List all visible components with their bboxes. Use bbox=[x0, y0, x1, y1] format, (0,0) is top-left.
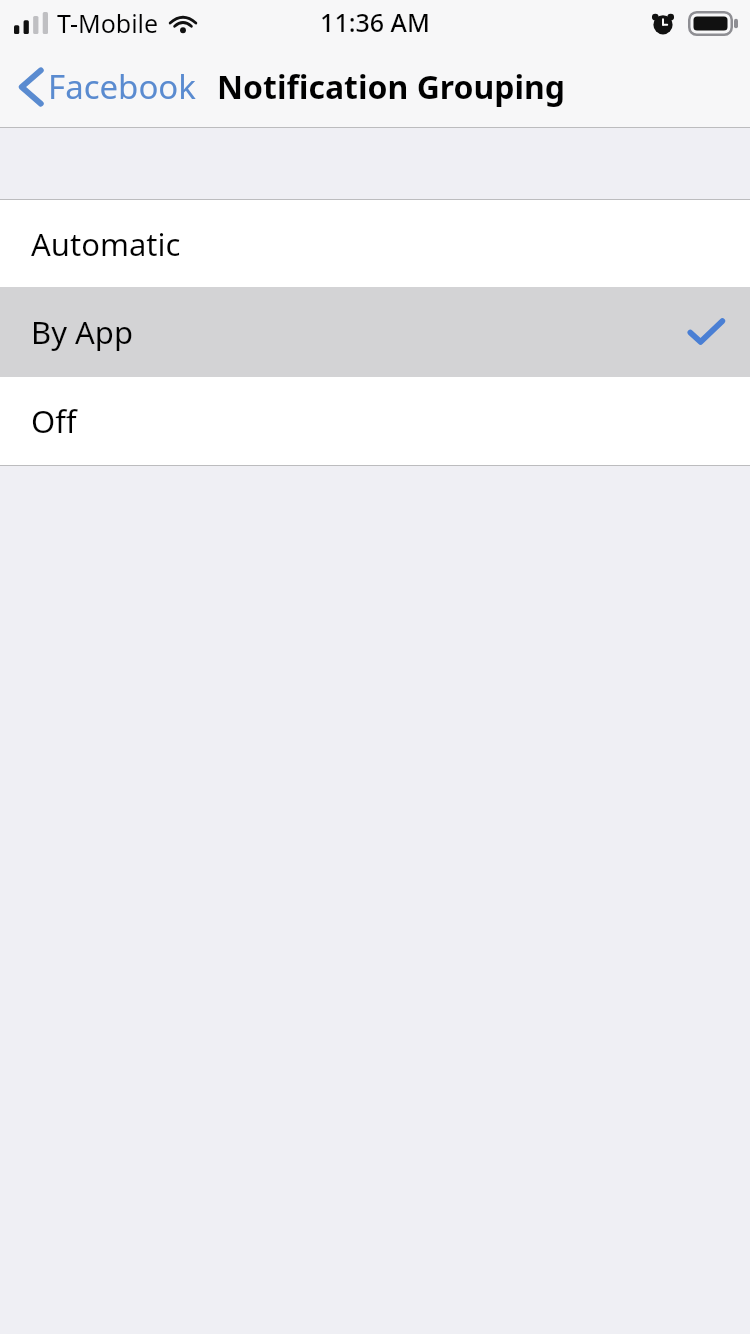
staticText: Automatic bbox=[31, 223, 181, 265]
other: Selected bbox=[689, 319, 723, 345]
button[interactable]: Facebook bbox=[0, 56, 206, 117]
staticText: Facebook bbox=[48, 64, 196, 109]
staticText: By App bbox=[31, 311, 133, 353]
button[interactable]: Off bbox=[0, 377, 750, 465]
staticText: Notification Grouping bbox=[217, 65, 566, 109]
staticText: Off bbox=[31, 400, 77, 442]
staticText: 11:36 AM bbox=[320, 5, 430, 39]
button[interactable]: By App bbox=[0, 287, 750, 377]
button[interactable]: Automatic bbox=[0, 200, 750, 287]
staticText: T-Mobile bbox=[57, 6, 159, 40]
